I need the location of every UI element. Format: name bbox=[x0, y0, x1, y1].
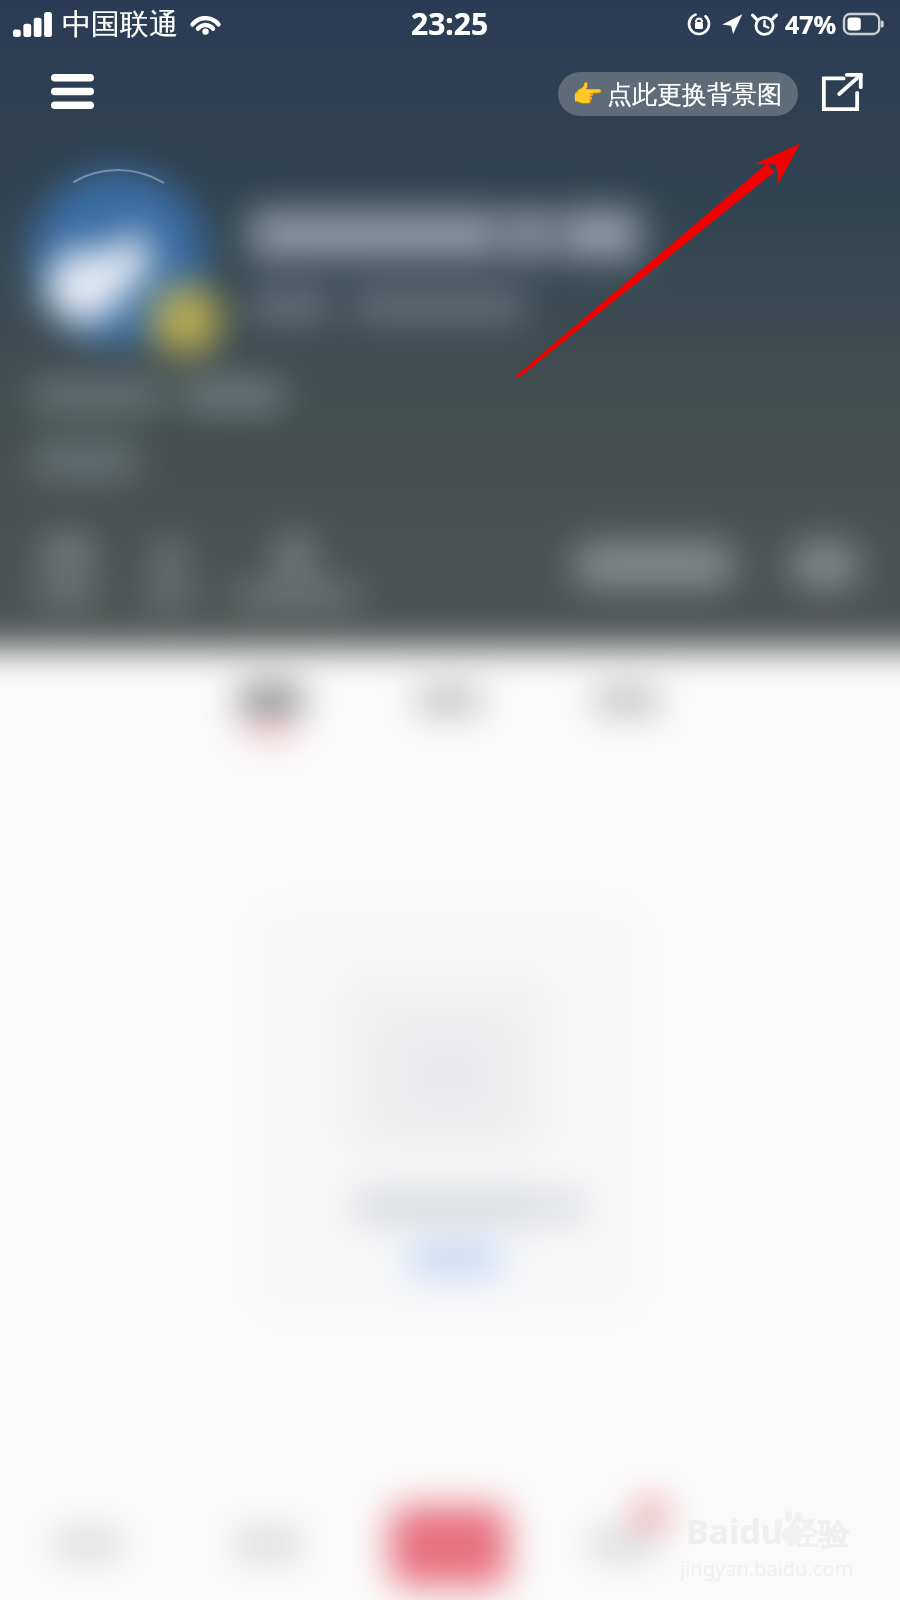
button[interactable]: Works tab bbox=[210, 672, 330, 752]
staticText: 23:25 bbox=[411, 3, 489, 44]
staticText: 👉 bbox=[572, 80, 604, 109]
staticText: 中国联通 bbox=[62, 6, 178, 43]
button[interactable]: Menu bbox=[41, 63, 103, 125]
staticText: 47% bbox=[785, 7, 837, 41]
button[interactable]: Go publish bbox=[396, 1236, 516, 1288]
button[interactable]: Signature bbox=[28, 436, 146, 484]
button[interactable]: Me bbox=[740, 1490, 880, 1596]
button[interactable]: Account name bbox=[244, 200, 648, 270]
button[interactable]: Create bbox=[386, 1500, 514, 1588]
staticText: 经验 bbox=[787, 1515, 849, 1554]
button[interactable]: Messages bbox=[560, 1490, 700, 1596]
button[interactable]: More bbox=[790, 542, 860, 588]
button[interactable]: Share bbox=[816, 70, 864, 118]
button[interactable]: Profile photo bbox=[30, 170, 206, 346]
button[interactable]: Edit profile bbox=[572, 542, 736, 588]
button[interactable]: Followers bbox=[24, 528, 134, 614]
button[interactable]: Likes bbox=[228, 528, 368, 614]
button[interactable]: Following bbox=[138, 528, 224, 614]
staticText: Baidu bbox=[686, 1508, 783, 1554]
button[interactable]: Tag bbox=[26, 372, 172, 418]
button[interactable]: Discover bbox=[200, 1490, 340, 1596]
button[interactable]: Collections tab bbox=[568, 672, 688, 752]
button[interactable]: Likes tab bbox=[390, 672, 510, 752]
button[interactable]: Account details bbox=[244, 284, 540, 330]
button[interactable]: 👉 bbox=[558, 72, 798, 116]
staticText: 点此更换背景图 bbox=[607, 79, 782, 110]
button[interactable]: Tag bbox=[178, 372, 294, 418]
button[interactable]: Home bbox=[20, 1490, 160, 1596]
staticText: jingyan.baidu.com bbox=[680, 1555, 854, 1582]
